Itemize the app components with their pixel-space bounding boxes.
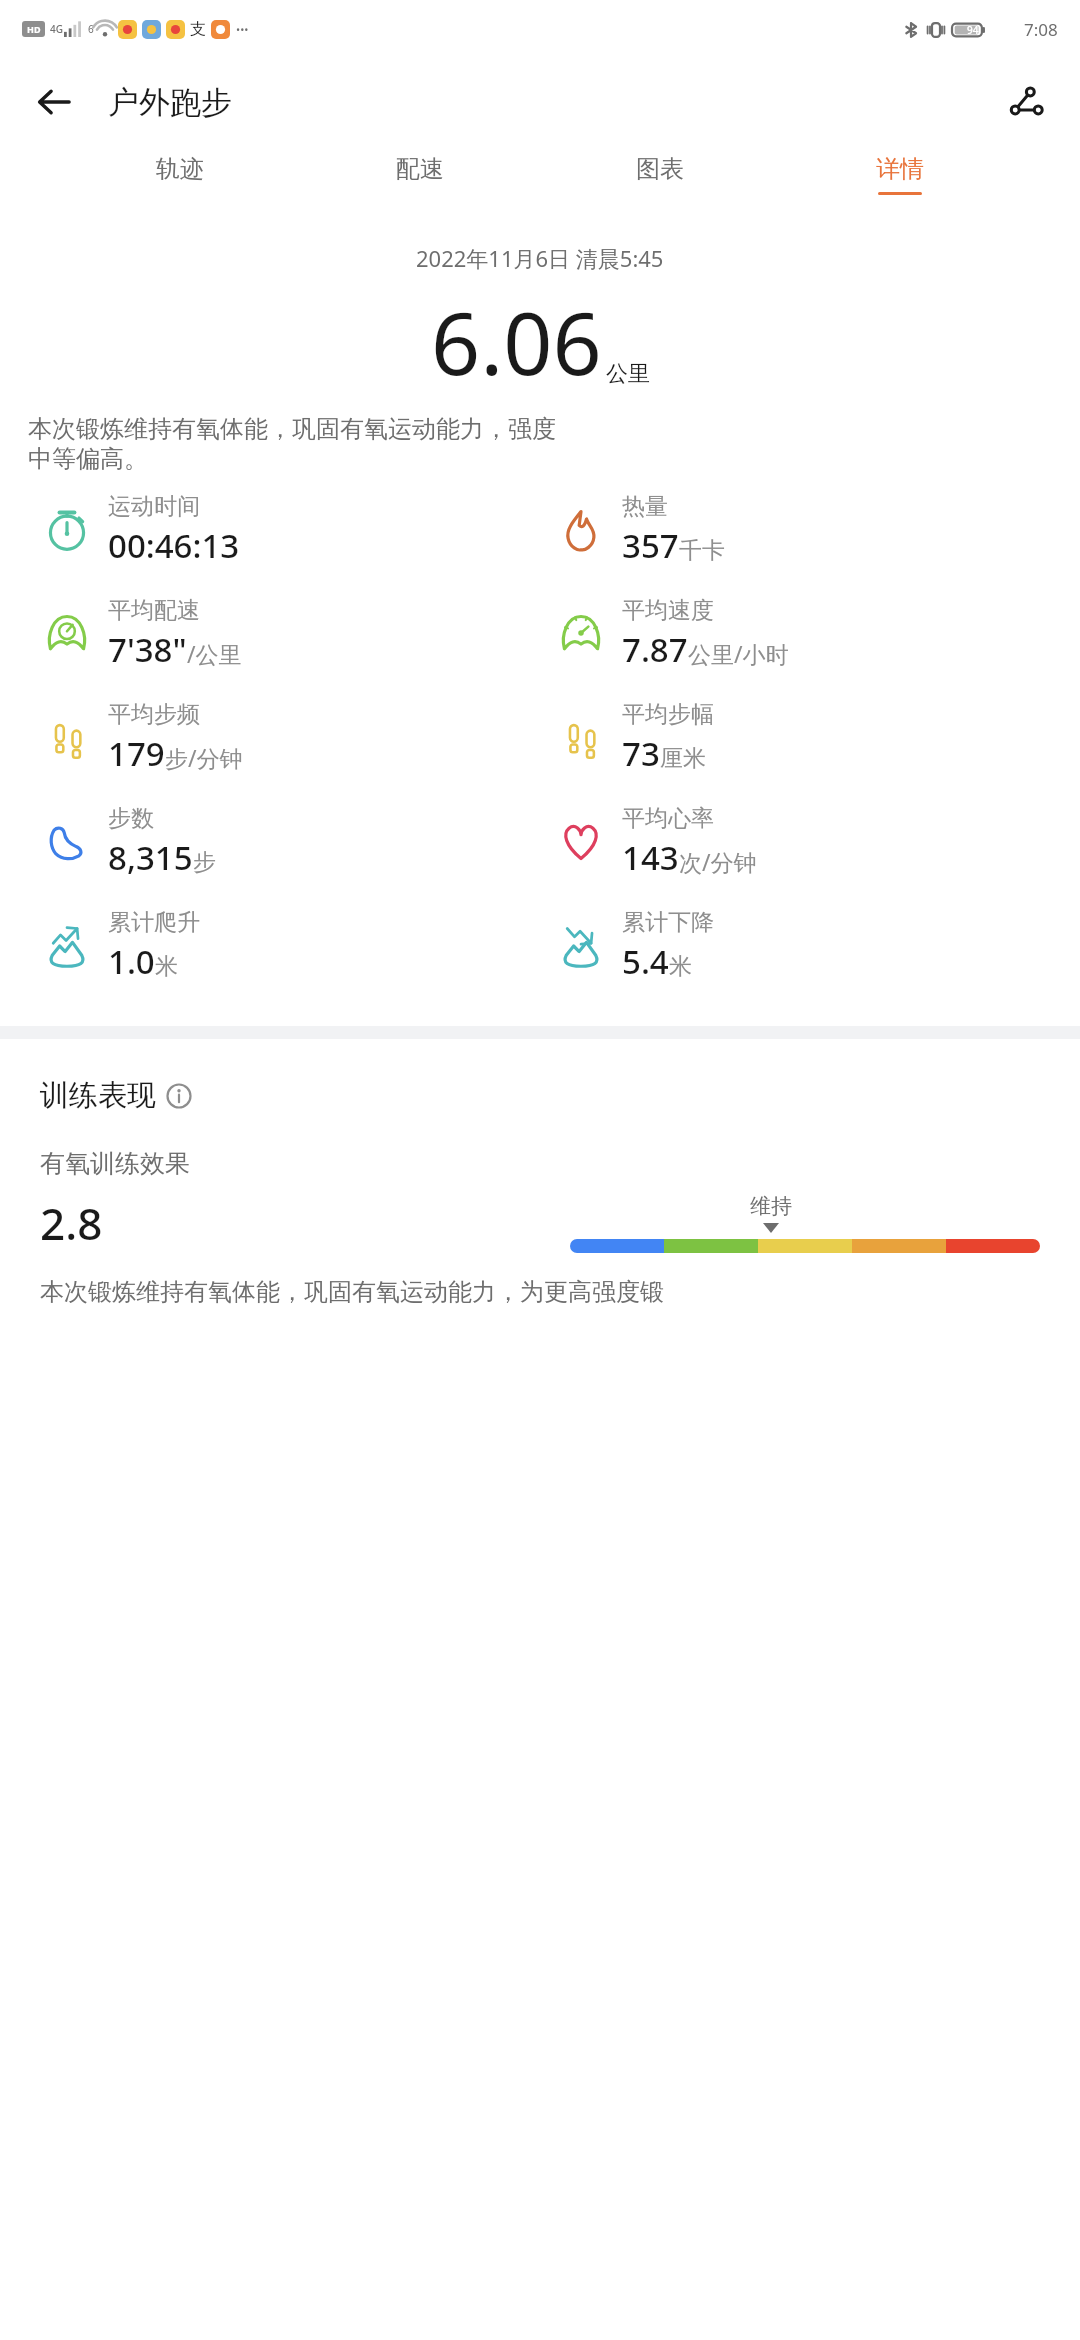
staticText: 1.0	[108, 939, 155, 984]
staticText: 热量	[622, 492, 668, 521]
staticText: 平均配速	[108, 596, 200, 625]
button[interactable]: 平均步幅	[554, 700, 1080, 776]
button[interactable]: 平均配速	[40, 596, 540, 672]
staticText: /公里	[187, 638, 242, 669]
other: 说明	[166, 1083, 192, 1109]
staticText: 公里	[606, 360, 650, 388]
button[interactable]: 平均步频	[40, 700, 540, 776]
staticText: 厘米	[660, 744, 706, 773]
staticText: 训练表现	[40, 1077, 156, 1114]
staticText: 00:46:13	[108, 523, 240, 568]
staticText: 357	[622, 523, 679, 568]
staticText: 143	[622, 835, 679, 880]
staticText: 6	[88, 22, 94, 36]
staticText: 累计下降	[622, 908, 714, 937]
staticText: 公里/小时	[688, 638, 789, 669]
staticText: 平均心率	[622, 804, 714, 833]
staticText: 米	[669, 952, 692, 981]
staticText: 94	[967, 23, 979, 37]
button[interactable]: 分享	[996, 72, 1056, 132]
staticText: 千卡	[679, 536, 725, 565]
staticText: 平均速度	[622, 596, 714, 625]
button[interactable]: 平均速度	[554, 596, 1080, 672]
button[interactable]: 累计下降	[554, 908, 1080, 984]
button[interactable]: 累计爬升	[40, 908, 540, 984]
staticText: 米	[155, 952, 178, 981]
staticText: HD	[27, 23, 41, 35]
staticText: 户外跑步	[108, 83, 232, 122]
button[interactable]: 步数	[40, 804, 540, 880]
staticText: 中等偏高。	[28, 444, 148, 474]
staticText: 运动时间	[108, 492, 200, 521]
staticText: 维持	[750, 1193, 792, 1219]
staticText: 73	[622, 731, 660, 776]
staticText: 7.87	[622, 627, 688, 672]
staticText: 179	[108, 731, 165, 776]
staticText: 次/分钟	[679, 846, 757, 877]
staticText: 有氧训练效果	[40, 1148, 190, 1179]
staticText: 详情	[876, 154, 924, 184]
button[interactable]: 详情	[870, 146, 930, 203]
staticText: 本次锻炼维持有氧体能，巩固有氧运动能力，强度	[28, 414, 556, 444]
staticText: 7:08	[1024, 18, 1058, 41]
staticText: 平均步频	[108, 700, 200, 729]
button[interactable]: 返回	[24, 72, 84, 132]
button[interactable]: 热量	[554, 492, 1080, 568]
staticText: 图表	[636, 154, 684, 184]
staticText: 2022年11月6日 清晨5:45	[416, 243, 664, 273]
staticText: 配速	[396, 154, 444, 184]
staticText: 步/分钟	[165, 742, 243, 773]
staticText: 平均步幅	[622, 700, 714, 729]
staticText: 本次锻炼维持有氧体能，巩固有氧运动能力，为更高强度锻	[40, 1277, 664, 1307]
staticText: 支	[190, 19, 206, 39]
staticText: 累计爬升	[108, 908, 200, 937]
button[interactable]: 训练表现	[40, 1077, 192, 1114]
staticText: •••	[236, 22, 249, 37]
staticText: 7'38"	[108, 627, 187, 672]
staticText: 2.8	[40, 1193, 103, 1253]
button[interactable]: 轨迹	[150, 146, 210, 203]
staticText: 8,315	[108, 835, 193, 880]
button[interactable]: 配速	[390, 146, 450, 203]
staticText: 轨迹	[156, 154, 204, 184]
staticText: 步	[193, 848, 216, 877]
button[interactable]: 运动时间	[40, 492, 540, 568]
staticText: 5.4	[622, 939, 669, 984]
button[interactable]: 平均心率	[554, 804, 1080, 880]
staticText: 6.06	[431, 283, 602, 400]
button[interactable]: 图表	[630, 146, 690, 203]
staticText: 步数	[108, 804, 154, 833]
staticText: 4G	[50, 22, 63, 36]
